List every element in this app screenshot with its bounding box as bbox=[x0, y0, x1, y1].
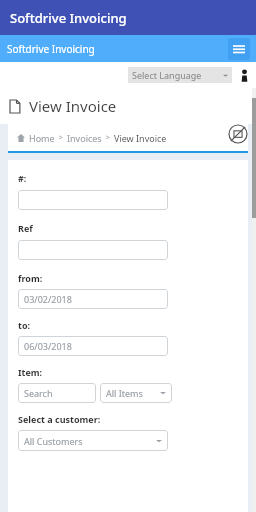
staticText: Select Language bbox=[132, 69, 223, 81]
button[interactable]: Search bbox=[18, 383, 96, 403]
staticText: Search bbox=[24, 387, 53, 399]
staticText: 03/02/2018 bbox=[24, 293, 72, 305]
staticText: to: bbox=[18, 319, 31, 331]
button[interactable]: 06/03/2018 bbox=[18, 336, 168, 356]
staticText: Item: bbox=[18, 366, 43, 378]
staticText: View Invoice bbox=[114, 132, 167, 144]
staticText: Softdrive Invoicing bbox=[7, 42, 95, 56]
button[interactable] bbox=[18, 190, 168, 210]
button[interactable]: Home bbox=[29, 132, 55, 144]
staticText: All Items bbox=[106, 387, 160, 399]
staticText: > bbox=[55, 133, 67, 143]
button[interactable]: Invoices bbox=[67, 132, 102, 144]
staticText: #: bbox=[18, 172, 27, 184]
staticText: > bbox=[102, 133, 114, 143]
button[interactable]: Print invoice bbox=[228, 124, 248, 144]
button[interactable]: Account bbox=[236, 67, 252, 83]
button[interactable]: All Customers bbox=[18, 430, 168, 451]
staticText: All Customers bbox=[24, 435, 156, 447]
button[interactable]: Select Language bbox=[128, 67, 232, 83]
staticText: Select a customer: bbox=[18, 413, 101, 425]
staticText: from: bbox=[18, 272, 43, 284]
staticText: Softdrive Invoicing bbox=[10, 9, 127, 27]
staticText: View Invoice bbox=[29, 96, 117, 116]
staticText: Ref bbox=[18, 222, 33, 234]
staticText: 06/03/2018 bbox=[24, 340, 72, 352]
button[interactable]: Menu bbox=[228, 38, 250, 60]
button[interactable]: 03/02/2018 bbox=[18, 289, 168, 309]
button[interactable] bbox=[18, 240, 168, 260]
button[interactable]: All Items bbox=[100, 383, 172, 403]
